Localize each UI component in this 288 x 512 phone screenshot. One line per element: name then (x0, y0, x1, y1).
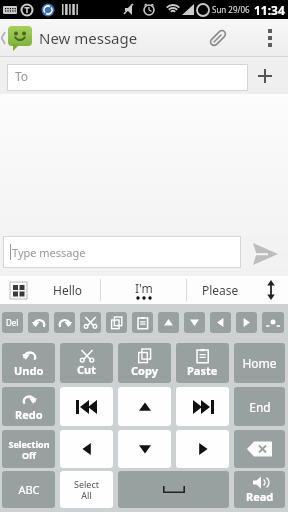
staticText: Copy (131, 363, 158, 378)
button[interactable] (80, 312, 101, 333)
button[interactable]: Type message (3, 236, 241, 268)
button[interactable]: Undo (2, 343, 55, 383)
button[interactable]: Hello (36, 276, 100, 304)
button[interactable]: New message (0, 19, 288, 57)
staticText: Del (6, 317, 19, 328)
button[interactable]: Copy (118, 343, 171, 383)
staticText: Hello (53, 282, 83, 298)
button[interactable] (250, 61, 280, 91)
button[interactable] (262, 312, 284, 333)
button[interactable] (254, 276, 288, 304)
staticText: New message (39, 28, 138, 48)
button[interactable] (60, 430, 113, 468)
staticText: Home (242, 355, 277, 371)
button[interactable] (118, 387, 171, 426)
button[interactable] (54, 312, 75, 333)
button[interactable] (204, 24, 232, 52)
button[interactable] (210, 312, 231, 333)
button[interactable] (176, 430, 229, 468)
button[interactable]: End (234, 387, 285, 426)
button[interactable] (234, 430, 285, 468)
button[interactable] (118, 430, 171, 468)
staticText: ABC (18, 482, 40, 497)
button[interactable]: To (7, 64, 248, 91)
staticText: Redo (15, 407, 43, 422)
button[interactable]: Selection Off (2, 430, 55, 468)
button[interactable]: Cut (60, 343, 113, 383)
staticText: Read (246, 489, 274, 504)
button[interactable] (28, 312, 49, 333)
button[interactable] (176, 387, 229, 426)
staticText: To (15, 68, 29, 84)
staticText: Paste (187, 363, 218, 378)
button[interactable]: ABC (2, 471, 55, 508)
button[interactable]: Del (2, 312, 23, 333)
staticText: End (249, 399, 271, 415)
button[interactable] (0, 276, 36, 304)
button[interactable]: I'm (101, 276, 186, 304)
staticText: Please (202, 282, 239, 298)
button[interactable] (132, 312, 153, 333)
button[interactable]: Home (234, 343, 285, 383)
staticText: Type message (12, 245, 86, 260)
button[interactable] (106, 312, 127, 333)
button[interactable]: Please (187, 276, 254, 304)
button[interactable] (184, 312, 205, 333)
button[interactable]: Paste (176, 343, 229, 383)
button[interactable] (158, 312, 179, 333)
button[interactable] (60, 387, 113, 426)
button[interactable]: Select All (60, 471, 113, 508)
button[interactable]: Read (234, 471, 285, 508)
button[interactable] (236, 312, 257, 333)
button[interactable] (248, 237, 282, 271)
staticText: 11:34 (254, 2, 285, 18)
staticText: I'm (135, 280, 153, 296)
button[interactable] (118, 471, 229, 508)
button[interactable] (260, 19, 280, 57)
staticText: Undo (14, 363, 44, 378)
button[interactable]: Redo (2, 387, 55, 426)
staticText: Cut (77, 362, 96, 377)
staticText: Select All (74, 478, 99, 501)
staticText: Selection Off (8, 438, 50, 461)
staticText: Sun 29/06 (212, 4, 250, 15)
